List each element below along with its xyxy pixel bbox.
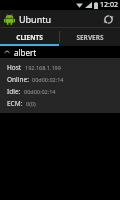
staticText: 192.168.1.199 [25, 64, 61, 71]
staticText: Ubuntu [19, 13, 52, 25]
staticText: Host [7, 63, 22, 72]
button[interactable]: Refresh [100, 11, 116, 27]
staticText: ECM: [7, 99, 23, 108]
staticText: 12:02 [100, 0, 118, 10]
staticText: 0(0) [26, 100, 36, 107]
staticText: albert [14, 47, 37, 58]
staticText: SERVERS [76, 33, 104, 42]
button[interactable]: albert [0, 46, 120, 58]
staticText: CLIENTS [16, 33, 43, 42]
staticText: Idle: [7, 87, 21, 96]
staticText: 00d00:02:14 [24, 88, 56, 95]
staticText: 00d00:02:14 [32, 76, 64, 83]
button[interactable]: CLIENTS [0, 28, 59, 46]
button[interactable]: Host [0, 58, 120, 113]
button[interactable]: SERVERS [60, 28, 120, 46]
staticText: Online: [7, 75, 29, 84]
